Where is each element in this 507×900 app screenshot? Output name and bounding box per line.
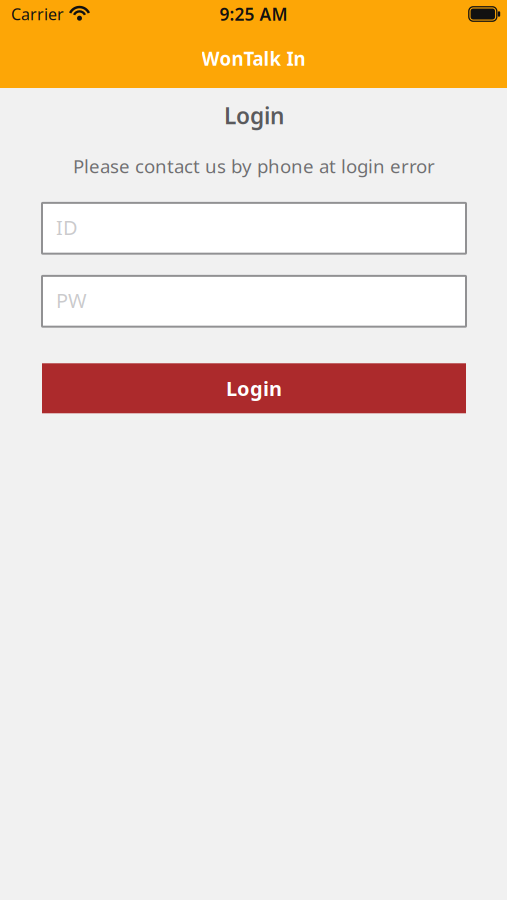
staticText: Login <box>226 375 282 402</box>
staticText: Login <box>224 100 284 131</box>
staticText: Please contact us by phone at login erro… <box>73 154 435 178</box>
button[interactable]: PW <box>42 276 466 327</box>
staticText: 9:25 AM <box>219 2 287 25</box>
button[interactable]: ID <box>42 203 466 254</box>
staticText: PW <box>56 287 87 314</box>
staticText: ID <box>56 214 78 241</box>
staticText: Carrier <box>11 3 64 25</box>
staticText: WonTalk In <box>201 46 305 71</box>
button[interactable]: Login <box>42 363 466 413</box>
